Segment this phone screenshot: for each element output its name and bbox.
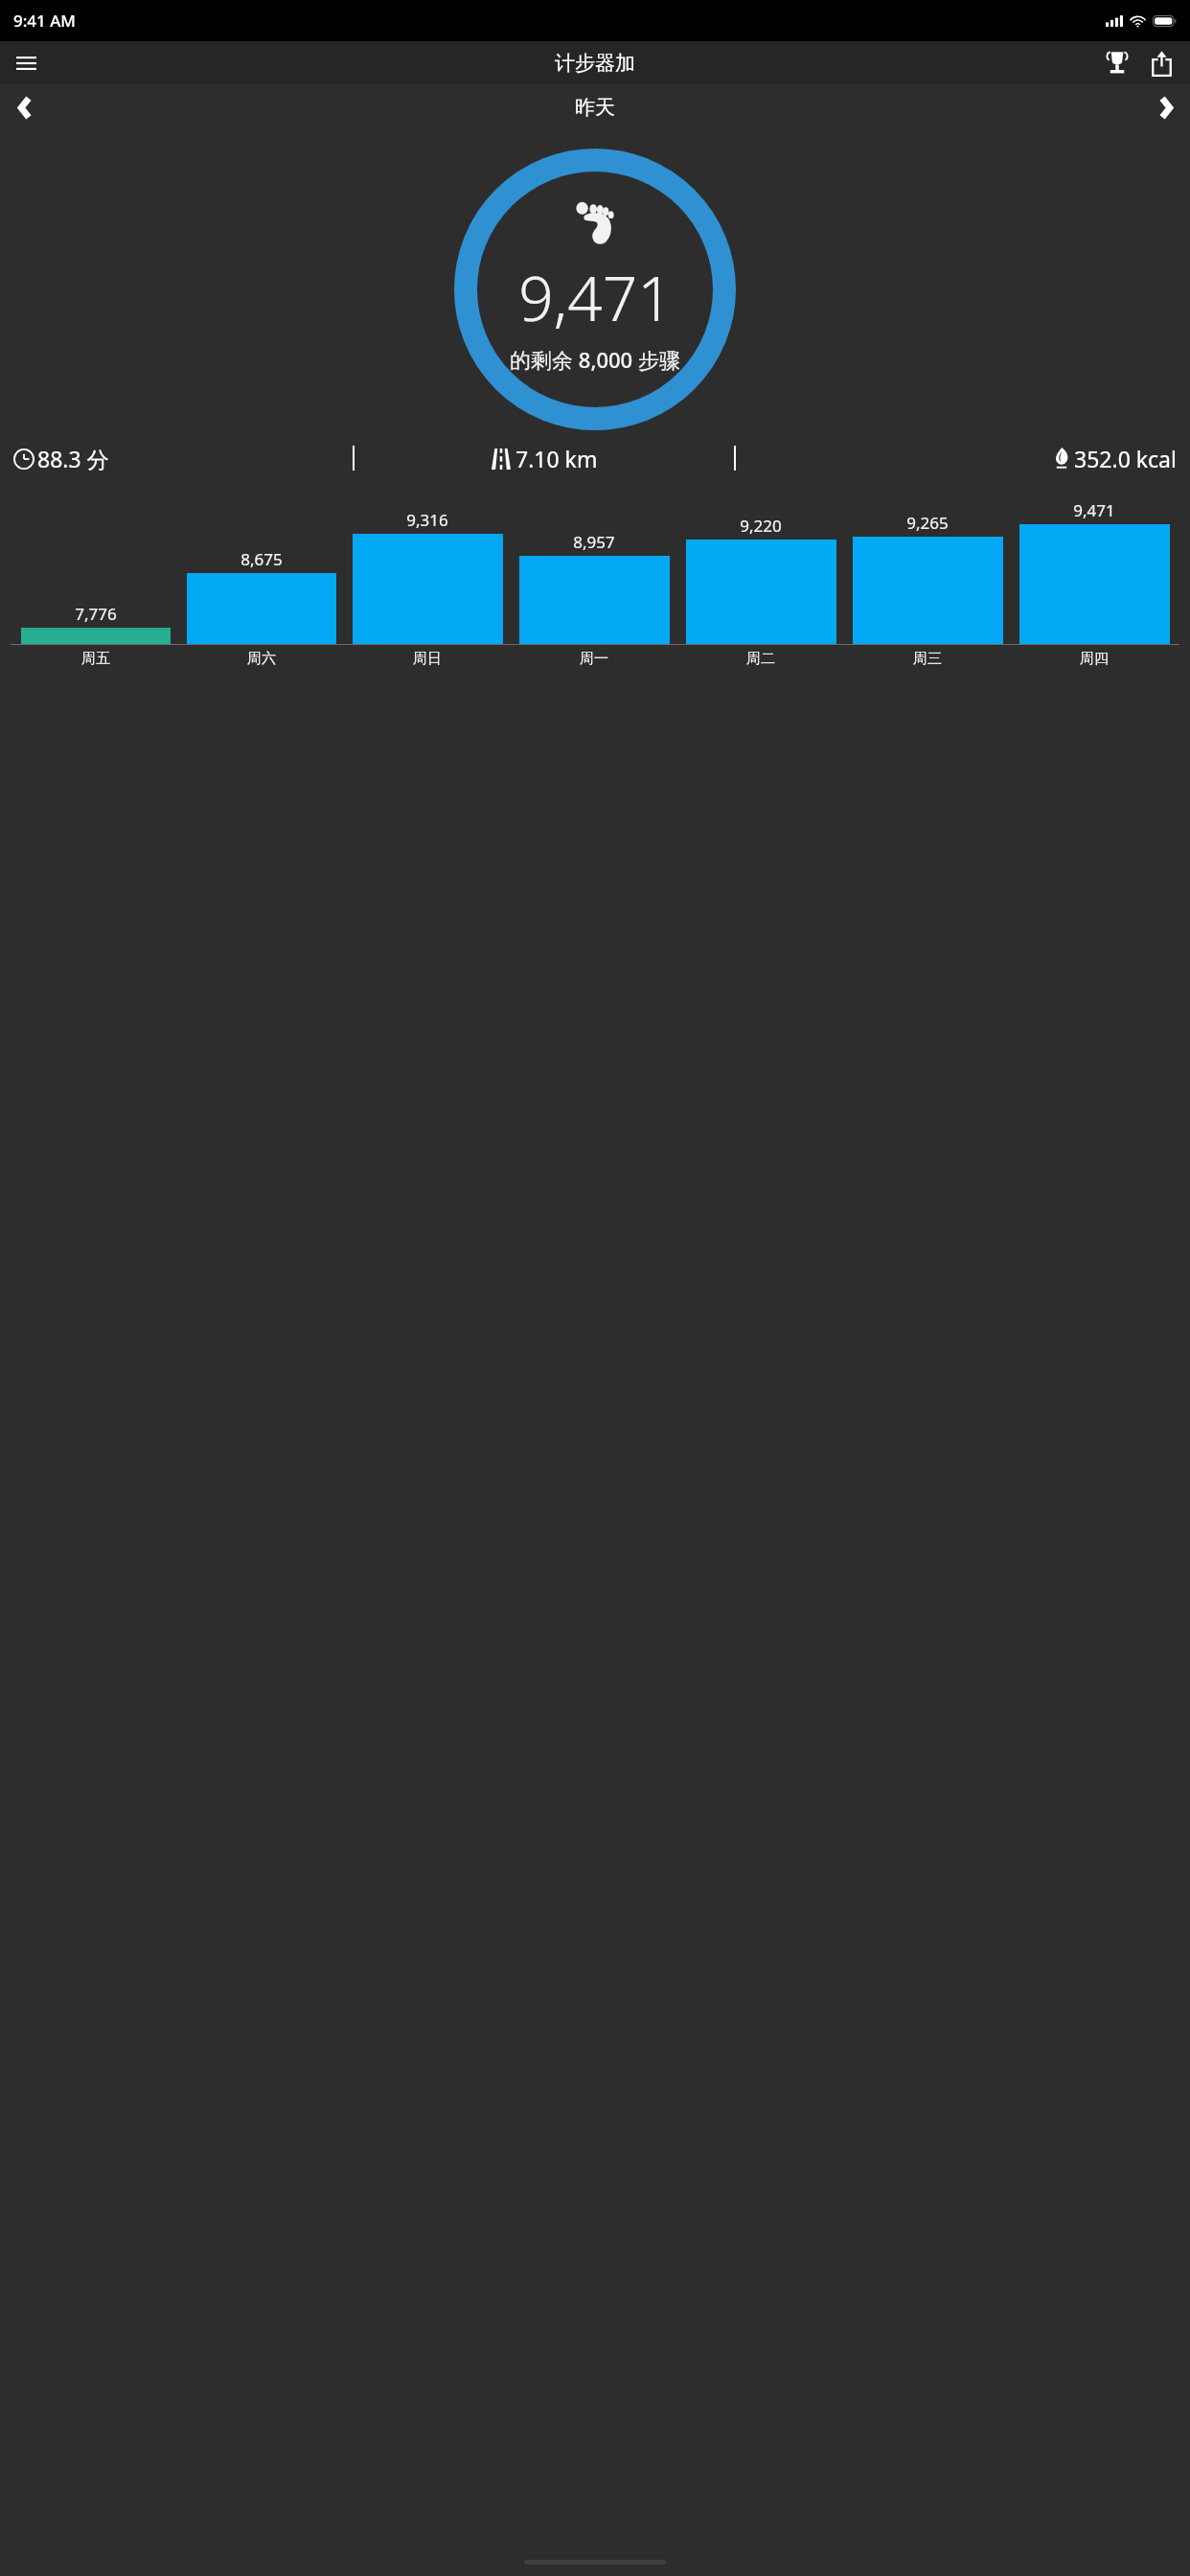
button[interactable]: Achievements [1096, 42, 1138, 84]
staticText: 9,220 [740, 515, 782, 537]
button[interactable]: 8,957 [511, 531, 677, 644]
staticText: 9:41 AM [13, 10, 76, 32]
staticText: 9,471 [1073, 499, 1115, 521]
staticText: 周二 [746, 650, 775, 668]
staticText: 8,675 [240, 548, 283, 570]
button[interactable]: 7,776 [12, 603, 178, 644]
staticText: 的剩余 8,000 步骤 [510, 345, 680, 374]
staticText: 周五 [81, 650, 110, 668]
staticText: 计步器加 [555, 51, 635, 76]
button[interactable]: 8,675 [178, 548, 344, 644]
button[interactable]: Share [1140, 42, 1182, 84]
button[interactable]: 9,265 [844, 512, 1011, 644]
button[interactable]: 9,316 [344, 509, 511, 644]
staticText: 7,776 [75, 603, 117, 625]
staticText: 周一 [580, 650, 608, 668]
staticText: 8,957 [573, 531, 615, 553]
button[interactable]: Menu [5, 42, 47, 84]
staticText: 88.3 分 [37, 444, 109, 473]
staticText: 周日 [413, 650, 442, 668]
button[interactable]: 9,220 [677, 515, 844, 644]
staticText: 352.0 kcal [1074, 444, 1177, 473]
staticText: 周三 [913, 650, 942, 668]
staticText: 9,471 [518, 256, 673, 339]
button[interactable]: Previous day [2, 85, 46, 129]
staticText: 9,265 [906, 512, 949, 534]
staticText: 周六 [247, 650, 276, 668]
staticText: 7.10 km [515, 444, 598, 473]
staticText: 周四 [1080, 650, 1109, 668]
button[interactable]: Next day [1144, 85, 1188, 129]
staticText: 9,316 [406, 509, 448, 531]
staticText: 昨天 [575, 95, 615, 120]
button[interactable]: 9,471 [1011, 499, 1178, 644]
